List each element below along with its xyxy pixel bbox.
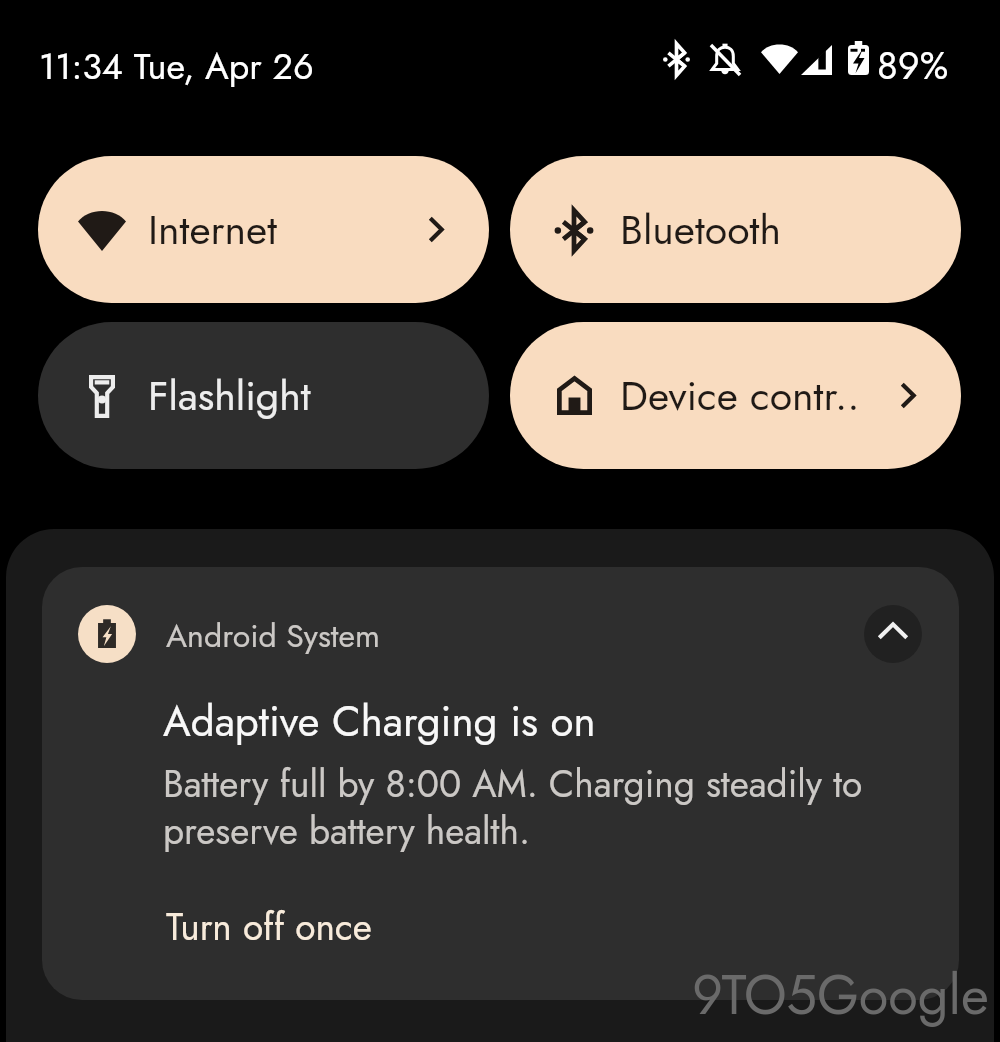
staticText: Android System — [166, 613, 380, 659]
staticText: Flashlight — [148, 366, 311, 425]
staticText: 9TO5Google — [692, 956, 989, 1034]
staticText: Internet — [148, 200, 278, 259]
staticText: Battery full by 8:00 AM. Charging steadi… — [163, 757, 883, 858]
staticText: Turn off once — [166, 900, 372, 953]
staticText: Adaptive Charging is on — [163, 691, 596, 752]
button[interactable]: Android System — [42, 567, 959, 1000]
button[interactable]: Turn off once — [166, 900, 372, 953]
button[interactable]: Internet — [38, 156, 489, 303]
staticText: Bluetooth — [620, 200, 781, 259]
button[interactable]: Device contr.. — [510, 322, 961, 469]
button[interactable]: Bluetooth — [510, 156, 961, 303]
button[interactable]: Collapse notification — [864, 605, 922, 663]
staticText: Device contr.. — [620, 366, 860, 425]
button[interactable]: Flashlight — [38, 322, 489, 469]
staticText: 11:34 Tue, Apr 26 — [39, 40, 314, 92]
staticText: 89% — [877, 38, 949, 93]
